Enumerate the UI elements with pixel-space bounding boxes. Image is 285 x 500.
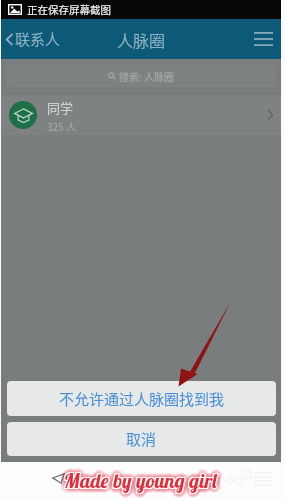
staticText: Made by young girl <box>60 465 214 490</box>
staticText: 正在保存屏幕截图 <box>27 2 111 17</box>
staticText: Made by young girl <box>65 469 219 494</box>
staticText: Made by young girl <box>63 470 217 495</box>
staticText: Made by young girl <box>67 467 221 492</box>
staticText: Made by young girl <box>63 467 217 492</box>
button[interactable]: 联系人 <box>1 19 69 59</box>
staticText: Made by young girl <box>64 470 218 495</box>
other: Screenshot <box>8 4 22 15</box>
staticText: Made by young girl <box>61 467 215 492</box>
staticText: Made by young girl <box>62 471 216 496</box>
staticText: Made by young girl <box>65 463 219 488</box>
staticText: Made by young girl <box>63 463 217 488</box>
staticText: Made by young girl <box>65 464 219 489</box>
staticText: Made by young girl <box>64 463 218 488</box>
staticText: Made by young girl <box>67 465 221 490</box>
staticText: Made by young girl <box>59 468 213 493</box>
button[interactable]: 不允许通过人脉圈找到我 <box>7 381 276 416</box>
staticText: Made by young girl <box>66 472 220 497</box>
staticText: Made by young girl <box>64 467 218 492</box>
staticText: Made by young girl <box>61 464 215 489</box>
staticText: Made by young girl <box>68 467 222 492</box>
staticText: Made by young girl <box>61 470 215 495</box>
staticText: Made by young girl <box>63 468 217 493</box>
button[interactable]: 同学 <box>1 95 281 135</box>
staticText: Made by young girl <box>67 466 221 491</box>
button[interactable]: Menu <box>249 25 277 53</box>
staticText: Made by young girl <box>65 467 219 492</box>
staticText: Made by young girl <box>69 469 223 494</box>
staticText: Made by young girl <box>61 472 215 497</box>
staticText: Made by young girl <box>61 469 215 494</box>
staticText: Made by young girl <box>64 469 218 494</box>
staticText: Made by young girl <box>63 469 217 494</box>
staticText: Made by young girl <box>68 470 222 495</box>
staticText: Made by young girl <box>62 467 216 492</box>
staticText: Made by young girl <box>66 464 220 489</box>
staticText: Made by young girl <box>65 469 219 494</box>
staticText: Made by young girl <box>69 467 223 492</box>
button[interactable]: 取消 <box>7 422 276 456</box>
button[interactable]: 搜索: 人脉圈 <box>7 64 276 87</box>
staticText: 不允许通过人脉圈找到我 <box>59 388 225 410</box>
staticText: Made by young girl <box>61 466 215 491</box>
staticText: Made by young girl <box>66 466 220 491</box>
staticText: 325 人 <box>47 119 76 133</box>
staticText: Made by young girl <box>67 468 221 493</box>
staticText: Made by young girl <box>65 470 219 495</box>
staticText: Made by young girl <box>61 465 215 490</box>
staticText: Made by young girl <box>63 467 217 492</box>
staticText: Made by young girl <box>66 465 220 490</box>
staticText: Made by young girl <box>64 471 218 496</box>
staticText: Made by young girl <box>61 468 215 493</box>
staticText: Made by young girl <box>65 473 219 498</box>
staticText: Made by young girl <box>64 469 218 494</box>
staticText: Made by young girl <box>68 465 222 490</box>
staticText: Made by young girl <box>66 468 220 493</box>
staticText: Made by young girl <box>60 470 214 495</box>
staticText: Made by young girl <box>68 469 222 494</box>
staticText: Made by young girl <box>65 467 219 492</box>
staticText: Made by young girl <box>64 467 218 492</box>
staticText: Made by young girl <box>67 470 221 495</box>
staticText: Made by young girl <box>63 469 217 494</box>
staticText: Made by young girl <box>62 464 216 489</box>
staticText: Made by young girl <box>63 465 217 490</box>
staticText: Made by young girl <box>62 470 216 495</box>
staticText: Made by young girl <box>62 472 216 497</box>
staticText: Made by young girl <box>60 471 214 496</box>
staticText: Made by young girl <box>59 467 213 492</box>
staticText: Made by young girl <box>62 466 216 491</box>
staticText: Made by young girl <box>67 471 221 496</box>
staticText: 人脉圈 <box>117 28 166 51</box>
staticText: Made by young girl <box>67 472 221 497</box>
staticText: Made by young girl <box>63 464 217 489</box>
staticText: Made by young girl <box>68 468 222 493</box>
staticText: Made by young girl <box>68 466 222 491</box>
staticText: Made by young girl <box>67 469 221 494</box>
staticText: Made by young girl <box>60 468 214 493</box>
staticText: Made by young girl <box>64 468 218 493</box>
staticText: Made by young girl <box>66 471 220 496</box>
staticText: Made by young girl <box>63 466 217 491</box>
staticText: Made by young girl <box>60 466 214 491</box>
staticText: Made by young girl <box>64 472 218 497</box>
staticText: 同学 <box>47 98 74 117</box>
staticText: Made by young girl <box>62 469 216 494</box>
staticText: Made by young girl <box>66 470 220 495</box>
staticText: 搜索: 人脉圈 <box>119 69 175 83</box>
staticText: Made by young girl <box>68 471 222 496</box>
staticText: Made by young girl <box>62 465 216 490</box>
staticText: Made by young girl <box>67 464 221 489</box>
staticText: Made by young girl <box>66 469 220 494</box>
staticText: Made by young girl <box>63 468 217 493</box>
staticText: Made by young girl <box>60 469 214 494</box>
staticText: Made by young girl <box>61 471 215 496</box>
staticText: Made by young girl <box>60 467 214 492</box>
staticText: Made by young girl <box>64 465 218 490</box>
staticText: Made by young girl <box>65 466 219 491</box>
staticText: Made by young girl <box>64 466 218 491</box>
staticText: Made by young girl <box>63 471 217 496</box>
staticText: Made by young girl <box>64 473 218 498</box>
staticText: Made by young girl <box>59 469 213 494</box>
staticText: Made by young girl <box>65 465 219 490</box>
